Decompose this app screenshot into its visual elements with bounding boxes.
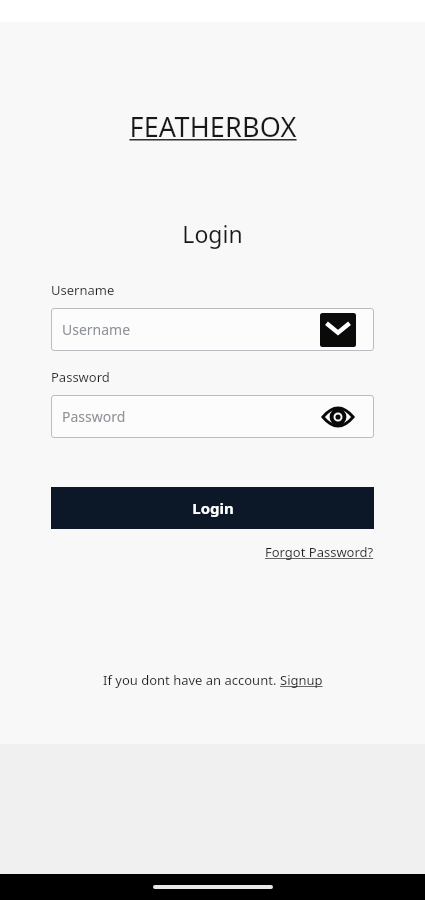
button[interactable]: Password (51, 395, 374, 438)
staticText: Login (182, 218, 243, 249)
staticText: Login (192, 498, 234, 518)
button[interactable]: Username (51, 308, 374, 351)
button[interactable]: Email (320, 313, 356, 347)
staticText: Password (51, 368, 110, 386)
staticText: If you dont have an account. (103, 671, 280, 689)
staticText: Username (51, 281, 115, 299)
staticText: FEATHERBOX (129, 108, 297, 145)
button[interactable]: Show password (320, 402, 356, 432)
staticText: Username (62, 320, 131, 339)
button[interactable]: Signup (280, 671, 323, 689)
staticText: Forgot Password? (265, 543, 374, 561)
staticText: Signup (280, 671, 323, 689)
button[interactable]: Login (51, 487, 374, 529)
staticText: Password (62, 407, 126, 426)
button[interactable]: Forgot Password? (265, 543, 374, 561)
